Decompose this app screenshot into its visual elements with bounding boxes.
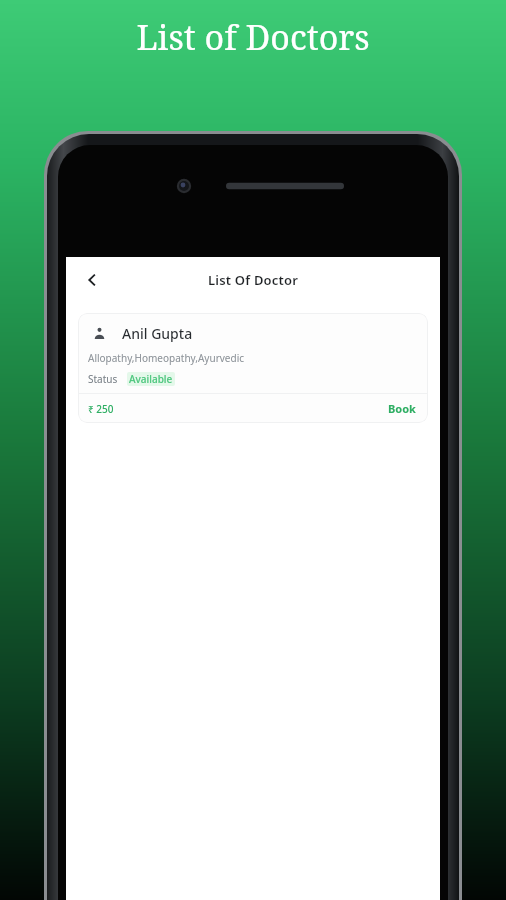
staticText: Book <box>388 401 416 416</box>
button[interactable]: Book <box>386 400 418 417</box>
staticText: Anil Gupta <box>122 324 193 343</box>
staticText: List Of Doctor <box>208 271 299 289</box>
staticText: List of Doctors <box>0 14 506 60</box>
button[interactable]: Back <box>72 260 112 300</box>
staticText: Allopathy,Homeopathy,Ayurvedic <box>88 351 245 365</box>
staticText: ₹ 250 <box>88 402 114 416</box>
staticText: Available <box>129 372 173 386</box>
staticText: Status <box>88 372 118 386</box>
button[interactable]: Anil Gupta <box>78 313 428 423</box>
